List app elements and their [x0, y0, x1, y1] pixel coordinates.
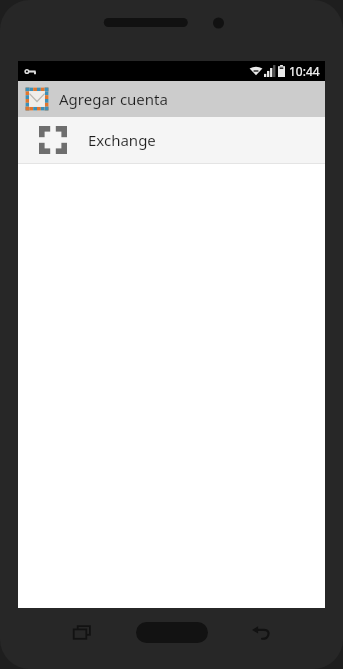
button[interactable]: Recent apps: [68, 619, 96, 647]
button[interactable]: Back: [247, 619, 275, 647]
button[interactable]: Home: [136, 622, 208, 643]
staticText: 10:44: [289, 63, 320, 79]
staticText: Agregar cuenta: [59, 89, 168, 109]
staticText: Exchange: [88, 130, 156, 150]
button[interactable]: Exchange: [18, 117, 325, 163]
button[interactable]: Agregar cuenta: [18, 81, 325, 117]
